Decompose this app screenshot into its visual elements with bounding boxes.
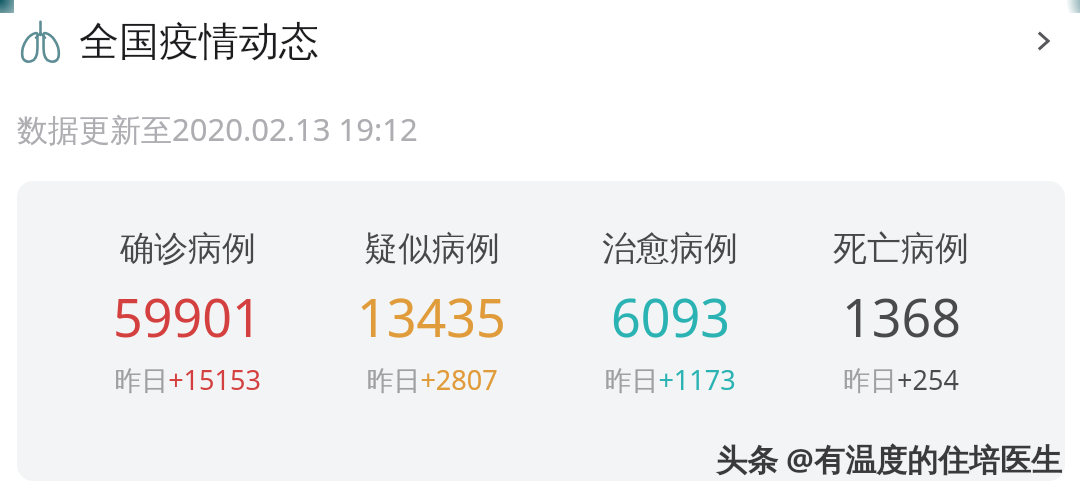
button[interactable]: 全国疫情动态 — [0, 0, 1080, 82]
staticText: 数据更新至2020.02.13 19:12 — [17, 108, 418, 150]
staticText: 昨日+1173 — [604, 361, 736, 398]
staticText: 治愈病例 — [602, 227, 738, 270]
staticText: 确诊病例 — [120, 227, 256, 270]
button[interactable]: 确诊病例 — [17, 181, 1065, 481]
staticText: 头条 @有温度的住培医生 — [716, 438, 1062, 480]
button[interactable]: 查看更多 — [1020, 18, 1066, 64]
staticText: 全国疫情动态 — [79, 16, 319, 66]
staticText: 死亡病例 — [833, 227, 969, 270]
staticText: 疑似病例 — [364, 227, 500, 270]
staticText: 1368 — [842, 281, 961, 352]
staticText: 6093 — [611, 281, 730, 352]
staticText: 昨日+254 — [843, 361, 959, 398]
staticText: 13435 — [357, 281, 506, 352]
staticText: 昨日+2807 — [366, 361, 498, 398]
staticText: 昨日+15153 — [114, 361, 261, 398]
staticText: 59901 — [113, 281, 262, 352]
